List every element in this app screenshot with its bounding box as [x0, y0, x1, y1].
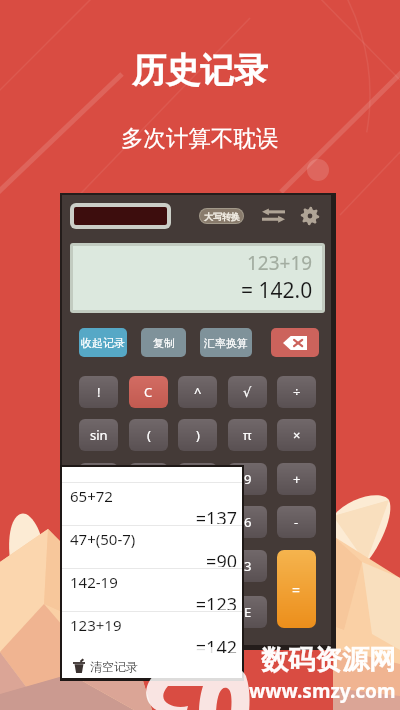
button[interactable]: 8	[129, 463, 168, 495]
staticText: 8	[145, 470, 153, 488]
button[interactable]: 123+19	[62, 612, 242, 654]
staticText: 清空记录	[90, 659, 138, 674]
staticText: +	[293, 470, 301, 488]
button[interactable]: 3	[228, 550, 267, 582]
staticText: )	[196, 426, 200, 444]
staticText: 4	[95, 513, 103, 531]
button[interactable]: 7	[79, 463, 118, 495]
staticText: =137	[70, 506, 237, 524]
button[interactable]: 142-19	[62, 569, 242, 611]
button[interactable]: 9	[178, 463, 217, 495]
staticText: -	[294, 513, 299, 531]
button[interactable]: 1	[79, 550, 118, 582]
button[interactable]: 0	[79, 596, 118, 628]
staticText: 大写转换	[204, 211, 240, 222]
staticText: 65+72	[70, 486, 113, 506]
staticText: =	[292, 580, 301, 599]
staticText: =90	[70, 549, 237, 567]
button[interactable]: -	[277, 506, 316, 538]
staticText: 复制	[153, 336, 175, 350]
button[interactable]: Swap	[262, 207, 285, 225]
staticText: C	[144, 383, 153, 401]
button[interactable]: 6	[178, 506, 217, 538]
button[interactable]: π	[228, 419, 267, 451]
button[interactable]: √	[228, 376, 267, 408]
button[interactable]: Equals	[277, 550, 316, 628]
staticText: 收起记录	[81, 336, 125, 350]
staticText: 123+19	[247, 250, 313, 276]
staticText: 47+(50-7)	[70, 529, 136, 549]
button[interactable]: ^	[178, 376, 217, 408]
staticText: 2	[145, 557, 153, 575]
button[interactable]: ÷	[277, 376, 316, 408]
button[interactable]: 9	[228, 463, 267, 495]
button[interactable]: 5	[129, 506, 168, 538]
button[interactable]: 4	[79, 506, 118, 538]
staticText: 3	[194, 557, 202, 575]
staticText: = 142.0	[241, 276, 313, 305]
staticText: 历史记录	[132, 49, 268, 92]
staticText: 123+19	[70, 615, 122, 635]
button[interactable]: 复制	[141, 328, 186, 357]
staticText: 3	[244, 557, 252, 575]
staticText: 1	[95, 557, 103, 575]
staticText: ÷	[293, 383, 301, 401]
staticText: 7	[95, 470, 103, 488]
button[interactable]: (	[129, 419, 168, 451]
button[interactable]: 2	[129, 550, 168, 582]
button[interactable]: 47+(50-7)	[62, 526, 242, 568]
button[interactable]: +	[277, 463, 316, 495]
staticText: ^	[194, 383, 202, 401]
button[interactable]: 汇率换算	[200, 328, 252, 357]
staticText: 多次计算不耽误	[121, 124, 279, 152]
button[interactable]: !	[79, 376, 118, 408]
button[interactable]: 65+72	[62, 483, 242, 525]
button[interactable]: sin	[79, 419, 118, 451]
button[interactable]: C	[129, 376, 168, 408]
staticText: 9	[194, 470, 202, 488]
staticText: √	[243, 385, 252, 400]
staticText: =123	[70, 592, 237, 610]
staticText: 6	[194, 513, 202, 531]
staticText: E	[244, 603, 252, 621]
staticText: .	[147, 603, 151, 621]
button[interactable]: 收起记录	[79, 328, 127, 357]
staticText: =142	[70, 635, 237, 653]
staticText: 5	[145, 513, 153, 531]
staticText: ×	[293, 426, 301, 444]
button[interactable]: E	[228, 596, 267, 628]
button[interactable]: Backspace	[271, 328, 319, 357]
staticText: 汇率换算	[204, 336, 248, 350]
staticText: www.smzy.com	[249, 678, 396, 704]
staticText: 0	[95, 603, 103, 621]
button[interactable]: E	[178, 596, 217, 628]
button[interactable]: 清空记录	[62, 654, 242, 678]
staticText: π	[243, 426, 252, 444]
button[interactable]: 6	[228, 506, 267, 538]
staticText: (	[147, 426, 151, 444]
staticText: 9	[244, 470, 252, 488]
staticText: 142-19	[70, 572, 118, 592]
staticText: !	[97, 383, 101, 401]
button[interactable]: ×	[277, 419, 316, 451]
staticText: sin	[90, 426, 108, 444]
button[interactable]: 大写转换	[200, 209, 243, 223]
staticText: 数码资源网	[261, 643, 396, 677]
button[interactable]: .	[129, 596, 168, 628]
button[interactable]: 3	[178, 550, 217, 582]
staticText: E	[194, 603, 202, 621]
staticText: 6	[244, 513, 252, 531]
button[interactable]: )	[178, 419, 217, 451]
button[interactable]: Settings	[300, 206, 320, 226]
